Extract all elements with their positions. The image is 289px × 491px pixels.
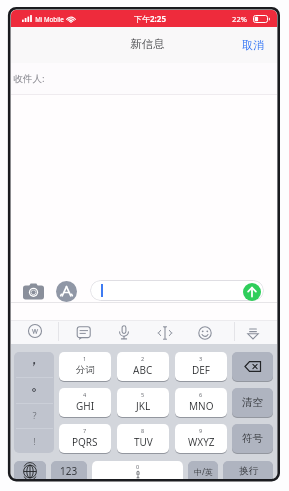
staticText: GHI [76,399,95,413]
button[interactable]: 0 [92,461,183,479]
button[interactable] [14,352,54,453]
staticText: JKL [136,399,151,413]
staticText: ! [33,435,36,448]
staticText: 0 [136,463,140,470]
staticText: 2 [141,355,145,362]
staticText: DEF [192,363,211,377]
staticText: 下午2:25 [134,13,166,24]
button[interactable]: 5 [117,388,169,417]
button[interactable]: 3 [175,352,227,381]
button[interactable] [243,283,261,301]
staticText: 中/英 [194,466,213,477]
button[interactable] [14,461,46,479]
button[interactable] [56,281,77,302]
button[interactable]: 中/英 [188,461,218,479]
staticText: 22% [232,14,247,24]
button[interactable] [156,324,174,342]
staticText: 换行 [239,465,258,477]
staticText: PQRS [72,435,98,449]
staticText: Mi Mobile [35,15,64,23]
button[interactable]: 123 [51,461,87,479]
button[interactable]: 取消 [233,34,273,56]
staticText: 7 [83,427,87,434]
button[interactable]: 6 [175,388,227,417]
staticText: MNO [189,399,214,413]
staticText: ? [32,409,37,422]
staticText: 分词 [76,364,95,376]
staticText: ABC [133,363,153,377]
button[interactable] [23,283,44,300]
staticText: TUV [134,435,153,449]
staticText: 3 [199,355,203,362]
button[interactable]: 换行 [223,461,273,479]
button[interactable] [26,322,44,340]
staticText: 5 [141,391,145,398]
button[interactable]: 2 [117,352,169,381]
button[interactable] [244,325,262,343]
staticText: WXYZ [188,435,215,449]
staticText: 1 [83,355,87,362]
staticText: 9 [199,427,203,434]
staticText: 6 [199,391,203,398]
button[interactable]: 7 [59,424,111,453]
staticText: 取消 [242,38,264,52]
staticText: 123 [60,464,78,478]
staticText: 8 [141,427,145,434]
staticText: 新信息 [130,37,165,51]
button[interactable]: 8 [117,424,169,453]
button[interactable] [75,324,93,342]
staticText: 4 [83,391,87,398]
button[interactable] [11,63,277,94]
button[interactable] [232,352,273,381]
staticText: 清空 [242,396,263,409]
button[interactable]: 清空 [232,388,273,417]
staticText: 符号 [242,432,263,445]
button[interactable] [115,324,133,342]
button[interactable]: 4 [59,388,111,417]
button[interactable]: 9 [175,424,227,453]
staticText: 收件人: [13,72,45,85]
button[interactable] [196,324,214,342]
button[interactable]: 1 [59,352,111,381]
button[interactable]: 符号 [232,424,273,453]
